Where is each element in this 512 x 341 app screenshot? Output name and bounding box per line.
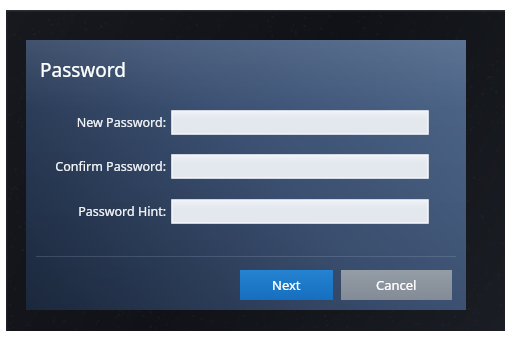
staticText: Confirm Password: [55,158,166,175]
staticText: New Password: [76,114,166,131]
staticText: Password Hint: [78,203,166,220]
button[interactable]: Next [240,270,333,300]
button[interactable] [172,155,428,178]
staticText: Next [272,276,301,294]
staticText: Password [40,57,126,83]
staticText: Cancel [376,276,417,294]
button[interactable] [172,200,428,223]
button[interactable]: Cancel [341,270,452,300]
button[interactable] [172,111,428,134]
